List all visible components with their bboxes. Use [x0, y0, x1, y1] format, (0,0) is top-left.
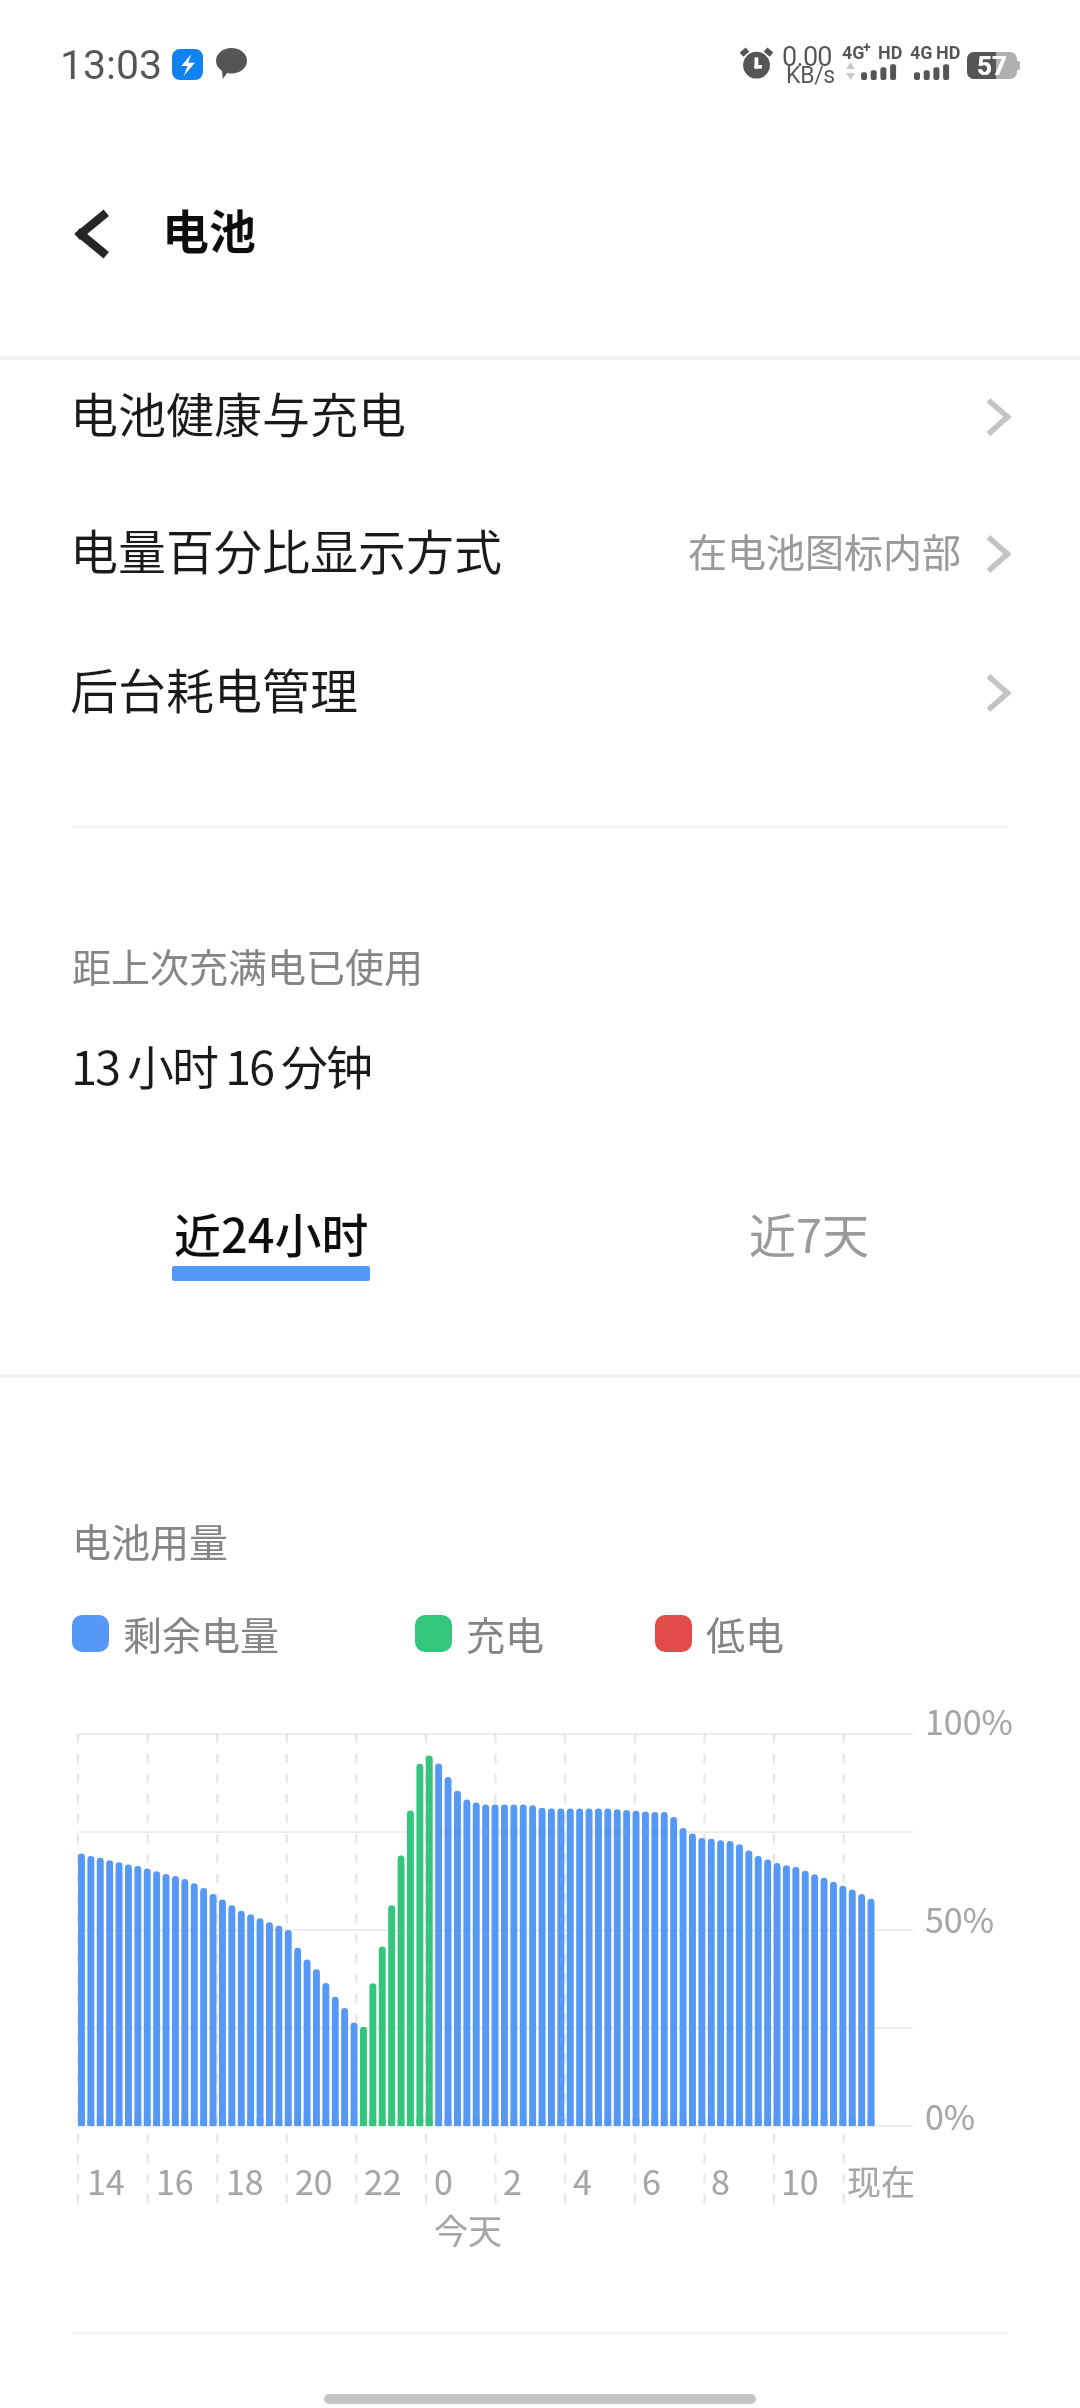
staticText: 22	[364, 2156, 402, 2205]
staticText: 后台耗电管理	[70, 653, 359, 723]
button[interactable]: 电量百分比显示方式	[0, 483, 1080, 619]
staticText: HD	[878, 42, 903, 63]
staticText: 4	[573, 2156, 592, 2205]
staticText: 20	[295, 2156, 333, 2205]
button[interactable]: 近24小时	[141, 1185, 401, 1295]
staticText: 近24小时	[174, 1198, 369, 1266]
staticText: 充电	[466, 1605, 545, 1661]
button[interactable]: 后台耗电管理	[0, 622, 1080, 758]
staticText: 4G	[842, 42, 865, 63]
staticText: 4G	[910, 42, 933, 63]
staticText: 2	[503, 2156, 522, 2205]
button[interactable]: 近7天	[689, 1185, 929, 1295]
staticText: 13:03	[60, 41, 163, 89]
staticText: 现在	[847, 2156, 915, 2205]
staticText: 近7天	[749, 1198, 870, 1266]
staticText: 100%	[925, 1696, 1013, 1745]
staticText: HD	[936, 42, 961, 63]
button[interactable]: Back	[40, 184, 140, 284]
staticText: 6	[642, 2156, 661, 2205]
staticText: 0	[434, 2156, 453, 2205]
staticText: 电池用量	[72, 1512, 229, 1568]
staticText: 低电	[706, 1605, 785, 1661]
button[interactable]: 电池健康与充电	[0, 346, 1080, 482]
staticText: 电量百分比显示方式	[70, 514, 503, 584]
staticText: 8	[711, 2156, 730, 2205]
staticText: 距上次充满电已使用	[72, 937, 424, 993]
staticText: 电池健康与充电	[70, 377, 407, 447]
staticText: 50%	[925, 1894, 995, 1943]
staticText: 57	[977, 51, 1007, 78]
staticText: 13 小时 16 分钟	[71, 1030, 371, 1098]
staticText: 18	[226, 2156, 264, 2205]
staticText: 今天	[434, 2205, 502, 2254]
staticText: 在电池图标内部	[688, 522, 962, 578]
staticText: 14	[87, 2156, 125, 2205]
staticText: +	[863, 39, 871, 55]
staticText: 10	[781, 2156, 819, 2205]
staticText: KB/s	[786, 62, 835, 89]
staticText: 16	[156, 2156, 194, 2205]
staticText: 0.00	[782, 41, 832, 73]
staticText: 0%	[925, 2091, 976, 2140]
staticText: 剩余电量	[123, 1605, 280, 1661]
staticText: 电池	[162, 194, 256, 262]
